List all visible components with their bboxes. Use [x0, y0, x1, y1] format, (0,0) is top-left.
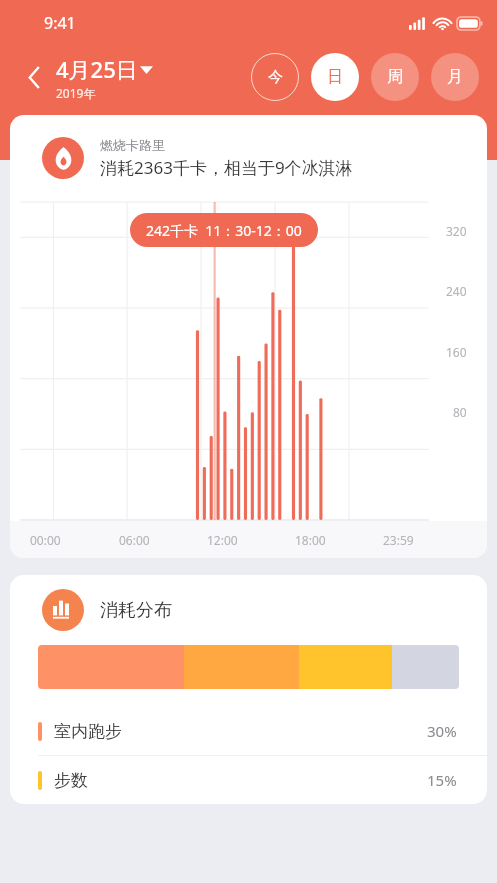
button[interactable]: 步数 — [10, 756, 487, 804]
staticText: 今 — [268, 68, 283, 87]
button[interactable]: Back — [20, 62, 50, 92]
staticText: 160 — [446, 344, 467, 360]
staticText: 燃烧卡路里 — [100, 137, 165, 153]
staticText: 12:00 — [207, 532, 295, 548]
staticText: 消耗分布 — [100, 599, 172, 622]
button[interactable]: 日 — [311, 53, 359, 101]
staticText: 月 — [447, 67, 463, 87]
button[interactable]: 今 — [251, 53, 299, 101]
staticText: 步数 — [54, 770, 88, 791]
staticText: 消耗2363千卡，相当于9个冰淇淋 — [100, 156, 353, 179]
button[interactable]: 月 — [431, 53, 479, 101]
button[interactable]: 4月25日 — [56, 54, 153, 101]
staticText: 06:00 — [119, 532, 207, 548]
staticText: 23:59 — [383, 532, 471, 548]
staticText: 30% — [427, 721, 457, 741]
staticText: 18:00 — [295, 532, 383, 548]
staticText: 日 — [327, 67, 343, 87]
staticText: 4月25日 — [56, 54, 138, 84]
button[interactable]: 242千卡 11：30-12：00 — [130, 213, 318, 247]
button[interactable]: 室内跑步 — [10, 707, 487, 756]
button[interactable]: 周 — [371, 53, 419, 101]
staticText: 周 — [387, 67, 403, 87]
staticText: 240 — [446, 283, 467, 299]
staticText: 15% — [427, 770, 457, 790]
button[interactable]: 消耗分布 — [10, 575, 487, 804]
button[interactable]: 燃烧卡路里 — [10, 115, 487, 558]
staticText: 80 — [453, 404, 467, 420]
staticText: 320 — [446, 223, 467, 239]
staticText: 2019年 — [56, 85, 96, 101]
staticText: 00:00 — [30, 532, 119, 548]
staticText: 9:41 — [44, 12, 76, 34]
staticText: 室内跑步 — [54, 721, 122, 742]
staticText: 242千卡 11：30-12：00 — [146, 221, 302, 240]
